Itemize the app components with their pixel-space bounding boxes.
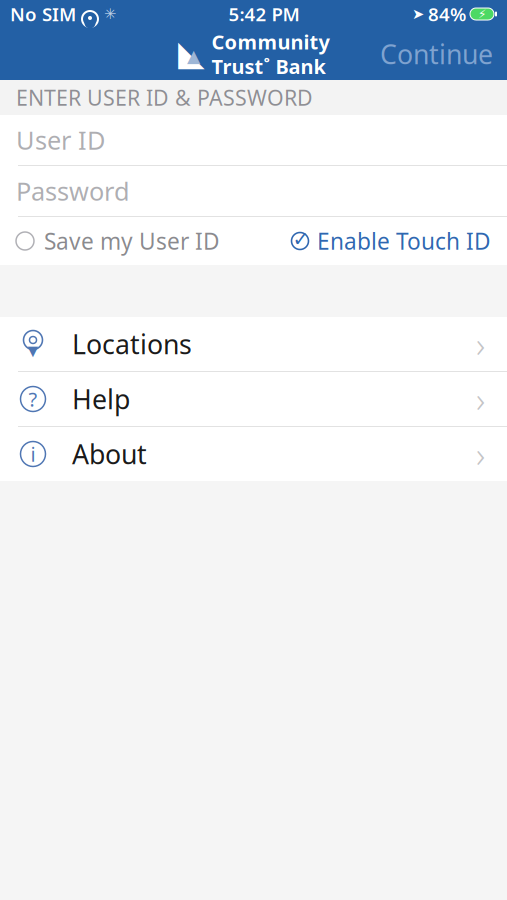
button[interactable]: ? <box>0 372 507 426</box>
staticText: ✳︎ <box>104 6 116 22</box>
staticText: ▲ <box>187 46 200 66</box>
button[interactable]: i <box>0 427 507 481</box>
staticText: › <box>476 321 485 367</box>
staticText: User ID <box>16 123 105 157</box>
staticText: › <box>476 431 485 477</box>
staticText: › <box>476 376 485 422</box>
staticText: Locations <box>72 326 192 362</box>
staticText: Continue <box>380 36 493 72</box>
staticText: Save my User ID <box>44 226 220 256</box>
staticText: i <box>30 441 35 467</box>
button[interactable]: ✓ <box>290 218 491 264</box>
staticText: ▾ <box>27 338 38 362</box>
staticText: ➤ <box>412 6 424 22</box>
staticText: ✓ <box>292 228 309 250</box>
staticText: Password <box>16 174 130 208</box>
button[interactable]: Continue <box>366 28 507 80</box>
staticText: Enable Touch ID <box>317 226 491 256</box>
staticText: No SIM <box>10 2 76 26</box>
staticText: Community <box>211 28 329 55</box>
staticText: 84% <box>428 2 466 26</box>
button[interactable]: Save my User ID <box>16 218 220 264</box>
staticText: ? <box>28 386 37 412</box>
staticText: Trust˚ Bank <box>211 53 325 80</box>
staticText: 5:42 PM <box>228 2 299 26</box>
button[interactable]: ▾ <box>0 317 507 371</box>
staticText: About <box>72 436 147 472</box>
staticText: Help <box>72 381 130 417</box>
staticText: ENTER USER ID & PASSWORD <box>16 83 313 112</box>
staticText: ⚡︎ <box>478 7 486 21</box>
staticText: ◣ <box>178 33 205 73</box>
